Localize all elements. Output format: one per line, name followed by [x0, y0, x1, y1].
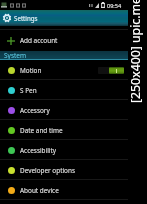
staticText: [250x400] upic.me	[127, 0, 144, 103]
staticText: About device	[20, 186, 59, 195]
button[interactable]: Settings	[0, 11, 14, 25]
button[interactable]: Date and time	[0, 120, 128, 140]
staticText: Settings	[14, 14, 38, 22]
staticText: Add account	[20, 36, 58, 45]
staticText: Accessibility	[20, 146, 57, 155]
button[interactable]: Accessibility	[0, 140, 128, 160]
staticText: 09:54	[107, 2, 122, 9]
button[interactable]: Developer options	[0, 160, 128, 180]
staticText: Developer options	[20, 166, 75, 175]
button[interactable]: Motion	[0, 60, 128, 80]
button[interactable]: About device	[0, 180, 128, 200]
button[interactable]: Motion on/off	[98, 67, 123, 74]
staticText: Date and time	[20, 126, 63, 135]
button[interactable]: Add account	[0, 30, 128, 51]
button[interactable]: S Pen	[0, 80, 128, 100]
button[interactable]: Accessory	[0, 100, 128, 120]
staticText: System	[4, 51, 27, 59]
staticText: Accessory	[20, 106, 50, 115]
staticText: Motion	[20, 66, 42, 75]
staticText: S Pen	[20, 86, 37, 95]
